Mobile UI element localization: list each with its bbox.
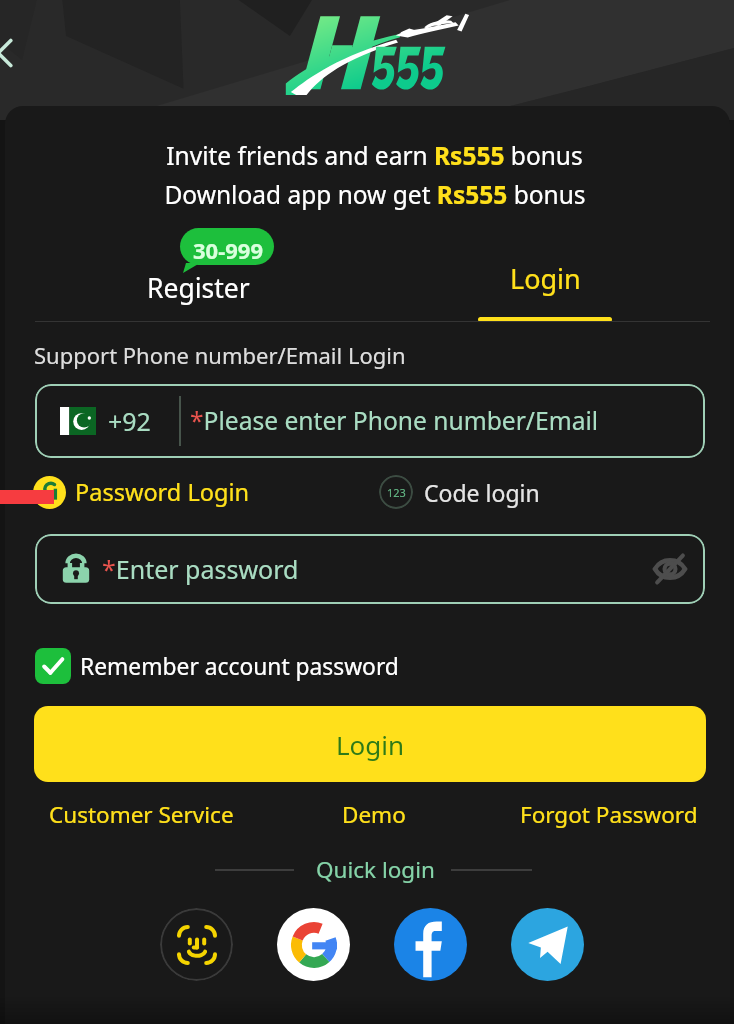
staticText: 123 [387,485,406,500]
staticText: 30-999 [193,235,263,265]
button[interactable]: Customer Service [49,799,234,830]
button[interactable]: Back [0,29,28,77]
button[interactable]: Demo [342,799,406,830]
button[interactable]: Face ID login [160,908,233,981]
staticText: Code login [424,477,540,508]
button[interactable]: Login [34,706,706,782]
staticText: Password Login [75,476,249,508]
button[interactable]: Login [455,260,635,332]
button[interactable]: Facebook login [394,908,467,981]
button[interactable]: Show password [645,544,695,594]
staticText: Support Phone number/Email Login [34,340,406,370]
staticText: *Please enter Phone number/Email [190,404,599,438]
button[interactable]: Google login [277,908,350,981]
button[interactable]: Remember account password [35,644,399,688]
staticText: Invite friends and earn Rs555 bonus [166,139,583,172]
staticText: Login [510,260,581,297]
staticText: *Enter password [102,552,299,586]
button[interactable]: Register [108,262,288,314]
button[interactable]: Password Login [33,472,249,512]
button[interactable]: *Enter password [35,534,705,604]
staticText: +92 [108,404,151,438]
button[interactable]: +92 [35,384,705,458]
staticText: Remember account password [80,651,399,682]
button[interactable]: Telegram login [511,908,584,981]
staticText: Register [147,270,250,306]
staticText: Quick login [316,854,435,885]
staticText: Login [336,727,405,762]
staticText: Download app now get Rs555 bonus [164,178,586,211]
button[interactable]: Forgot Password [520,799,698,830]
button[interactable]: 123 [379,472,540,512]
